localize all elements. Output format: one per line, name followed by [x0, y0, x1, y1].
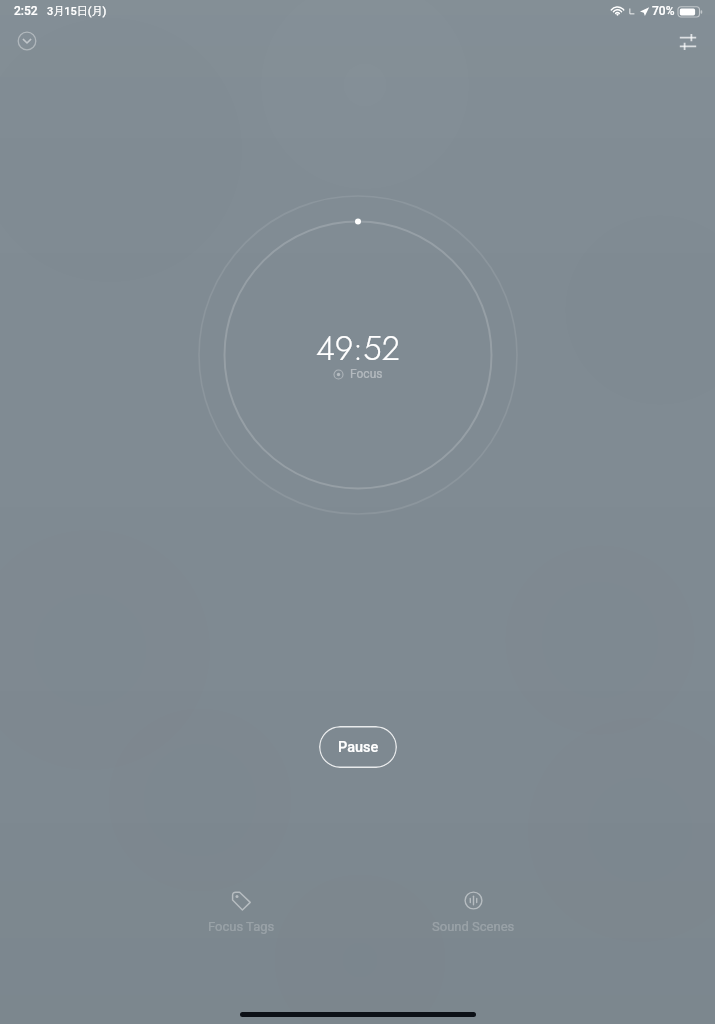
- staticText: 70%: [652, 4, 675, 18]
- staticText: 3月15日(月): [47, 4, 107, 18]
- staticText: 49:52: [316, 325, 400, 373]
- button[interactable]: Settings: [671, 25, 705, 59]
- button[interactable]: Sound Scenes: [413, 886, 533, 938]
- staticText: Focus: [350, 367, 383, 381]
- button[interactable]: Collapse: [12, 26, 42, 56]
- staticText: 2:52: [14, 4, 38, 18]
- staticText: Sound Scenes: [432, 919, 515, 934]
- button[interactable]: Focus Tags: [181, 886, 301, 938]
- button[interactable]: Pause: [319, 726, 397, 768]
- staticText: Focus Tags: [208, 919, 275, 934]
- staticText: Pause: [338, 739, 379, 756]
